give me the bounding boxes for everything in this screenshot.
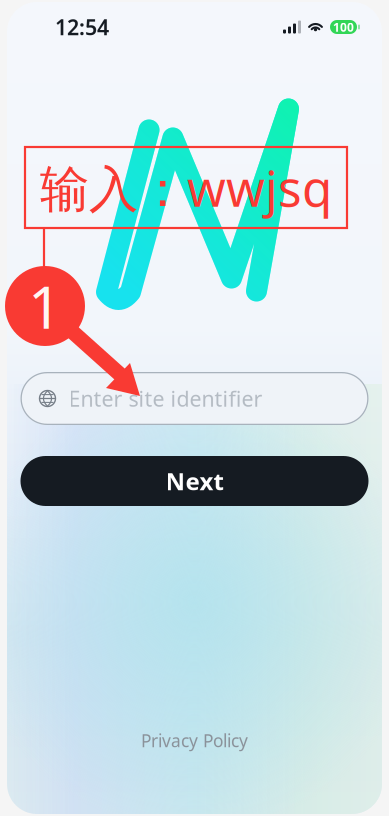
staticText: Privacy Policy <box>141 729 248 752</box>
staticText: 12:54 <box>55 13 109 41</box>
button[interactable]: Privacy Policy <box>133 721 256 760</box>
button[interactable]: Enter site identifier <box>20 372 368 425</box>
staticText: 100 <box>333 19 354 35</box>
staticText: Next <box>165 465 223 497</box>
button[interactable]: Next <box>20 456 368 506</box>
staticText: 1 <box>28 267 62 345</box>
staticText: 输入：wwjsq <box>40 155 332 220</box>
staticText: Enter site identifier <box>68 384 262 413</box>
